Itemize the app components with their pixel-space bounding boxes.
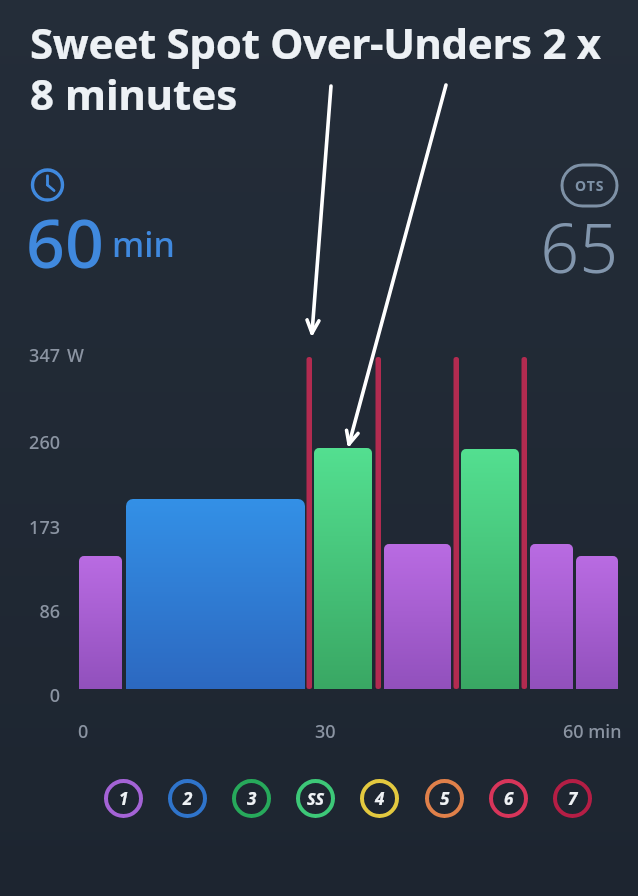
button[interactable]: 1 (104, 779, 143, 818)
staticText: OTS (575, 176, 605, 195)
staticText: 1 (119, 787, 129, 810)
button[interactable]: 5 (425, 779, 464, 818)
button[interactable]: SS (296, 779, 335, 818)
button[interactable]: 6 (489, 779, 528, 818)
staticText: 6 (504, 787, 514, 810)
staticText: SS (307, 788, 324, 810)
button[interactable]: 4 (360, 779, 399, 818)
staticText: W (67, 343, 84, 368)
staticText: min (112, 221, 175, 267)
button[interactable]: 7 (553, 779, 592, 818)
staticText: 5 (440, 787, 450, 810)
button[interactable]: 2 (168, 779, 207, 818)
staticText: 60 (26, 195, 104, 288)
staticText: 0 (49, 683, 60, 708)
staticText: 7 (568, 787, 578, 810)
staticText: 8 minutes (30, 65, 238, 122)
staticText: 65 (540, 200, 618, 293)
staticText: Sweet Spot Over-Unders 2 x (30, 14, 601, 71)
staticText: 86 (39, 599, 60, 624)
staticText: 3 (247, 787, 257, 810)
staticText: 60 min (563, 719, 622, 744)
staticText: 173 (29, 515, 60, 540)
staticText: 347 (29, 343, 60, 368)
button[interactable]: 3 (232, 779, 271, 818)
staticText: 2 (183, 787, 193, 810)
staticText: 260 (29, 430, 60, 455)
staticText: 30 (315, 719, 336, 744)
button[interactable]: OTS (562, 165, 617, 206)
staticText: 4 (375, 787, 385, 810)
staticText: 0 (78, 719, 89, 744)
